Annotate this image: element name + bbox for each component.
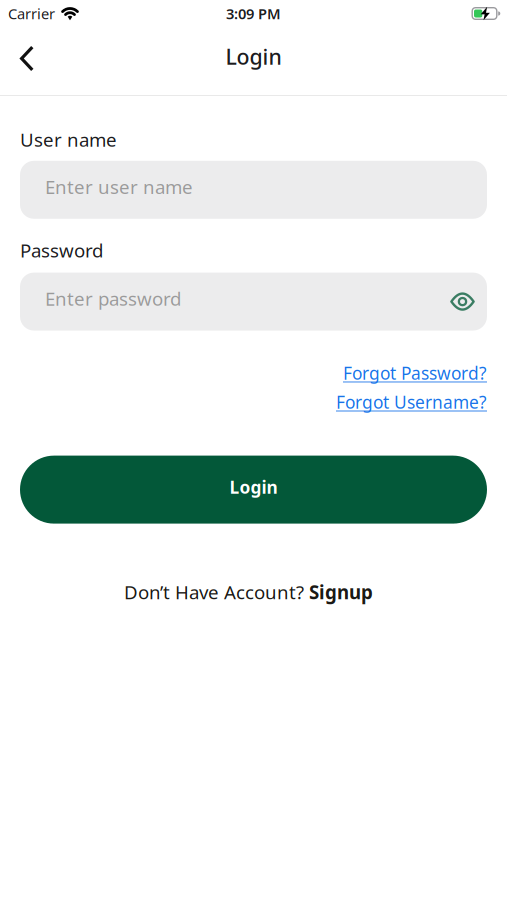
staticText: Don’t Have Account? Signup: [124, 580, 373, 604]
staticText: Enter password: [45, 286, 181, 311]
staticText: Enter user name: [45, 174, 193, 199]
button[interactable]: Show password: [450, 293, 475, 311]
staticText: Password: [20, 238, 103, 263]
staticText: Carrier: [8, 4, 55, 23]
staticText: Login: [225, 42, 281, 71]
staticText: 3:09 PM: [226, 4, 281, 23]
button[interactable]: Forgot Password?: [343, 362, 487, 385]
button[interactable]: Back: [0, 45, 46, 76]
button[interactable]: Login: [20, 456, 487, 524]
staticText: Login: [229, 476, 277, 499]
button[interactable]: Forgot Username?: [336, 391, 487, 414]
staticText: Forgot Password?: [343, 362, 487, 385]
staticText: Forgot Username?: [336, 391, 487, 414]
staticText: User name: [20, 127, 117, 152]
button[interactable]: Don’t Have Account? Signup: [124, 580, 373, 604]
